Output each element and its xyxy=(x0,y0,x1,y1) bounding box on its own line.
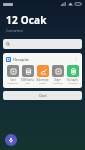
staticText: Bilinmeyen xyxy=(36,78,49,82)
staticText: Tüm xyxy=(25,82,30,85)
button[interactable]: Hesaplar xyxy=(5,55,80,63)
staticText: Diğer xyxy=(54,78,61,82)
staticText: Güvenlik xyxy=(68,82,78,85)
button[interactable] xyxy=(3,39,82,49)
staticText: Hesaplar xyxy=(13,57,30,62)
button[interactable]: Daha fazla xyxy=(73,56,79,62)
staticText: Geri xyxy=(10,78,16,82)
button[interactable]: Bu Sayfa xyxy=(65,65,80,85)
staticText: 12 Ocak xyxy=(6,13,47,27)
button[interactable]: Bilinmeyen xyxy=(35,65,50,85)
staticText: SIM Kartta xyxy=(21,78,34,82)
button[interactable]: Diğer xyxy=(50,65,65,85)
staticText: Özel xyxy=(39,93,47,98)
staticText: Cevap xyxy=(39,82,46,85)
staticText: Cumartesi xyxy=(6,28,23,33)
button[interactable]: Sesli arama xyxy=(5,134,17,146)
staticText: Bu Sayfa xyxy=(67,78,78,82)
staticText: Dönüşüm xyxy=(7,82,18,85)
button[interactable]: Özel xyxy=(3,91,82,100)
staticText: Güvenlik xyxy=(53,82,63,85)
button[interactable]: Geri xyxy=(5,65,20,85)
button[interactable]: SIM Kartta xyxy=(20,65,35,85)
